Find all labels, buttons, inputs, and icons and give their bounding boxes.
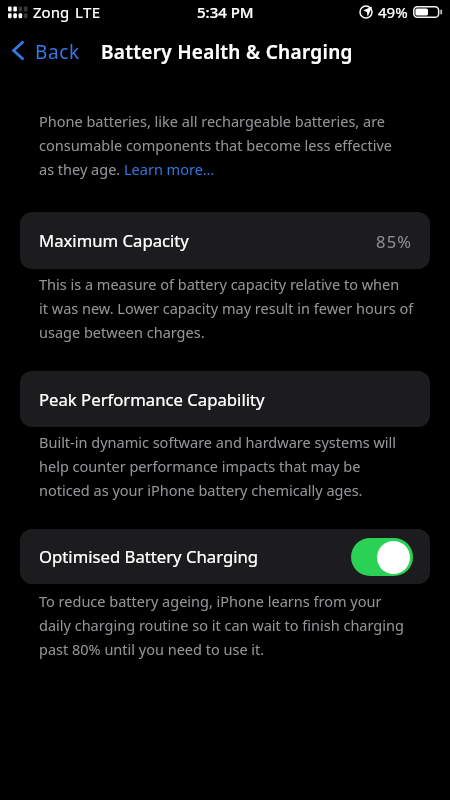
staticText: Built-in dynamic software and hardware s… (39, 429, 397, 501)
staticText: Zong (33, 2, 70, 22)
staticText: LTE (75, 2, 101, 22)
staticText: Maximum Capacity (39, 229, 189, 252)
staticText: Optimised Battery Charging (39, 545, 259, 568)
staticText: Peak Performance Capability (39, 388, 265, 411)
staticText: This is a measure of battery capacity re… (39, 271, 414, 343)
staticText: Phone batteries, like all rechargeable b… (39, 108, 392, 180)
button[interactable]: Optimised Battery Charging (20, 529, 430, 584)
button[interactable]: Peak Performance Capability (20, 371, 430, 427)
button[interactable]: Optimised Battery Charging, on (351, 538, 413, 576)
staticText: Battery Health & Charging (101, 39, 353, 65)
staticText: To reduce battery ageing, iPhone learns … (39, 588, 404, 660)
staticText: 85% (376, 230, 413, 252)
staticText: Back (35, 39, 80, 65)
button[interactable]: Learn more (124, 161, 215, 180)
button[interactable]: Back (0, 33, 90, 67)
button[interactable]: Maximum Capacity (20, 212, 430, 269)
staticText: 5:34 PM (197, 2, 254, 22)
staticText: 49% (378, 2, 408, 22)
